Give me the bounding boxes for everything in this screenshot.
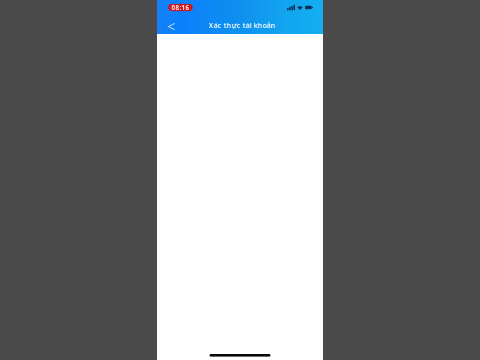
button[interactable]: Back [157, 16, 181, 34]
staticText: Xác thực tài khoản [208, 20, 275, 30]
staticText: 08:16 [171, 3, 189, 12]
